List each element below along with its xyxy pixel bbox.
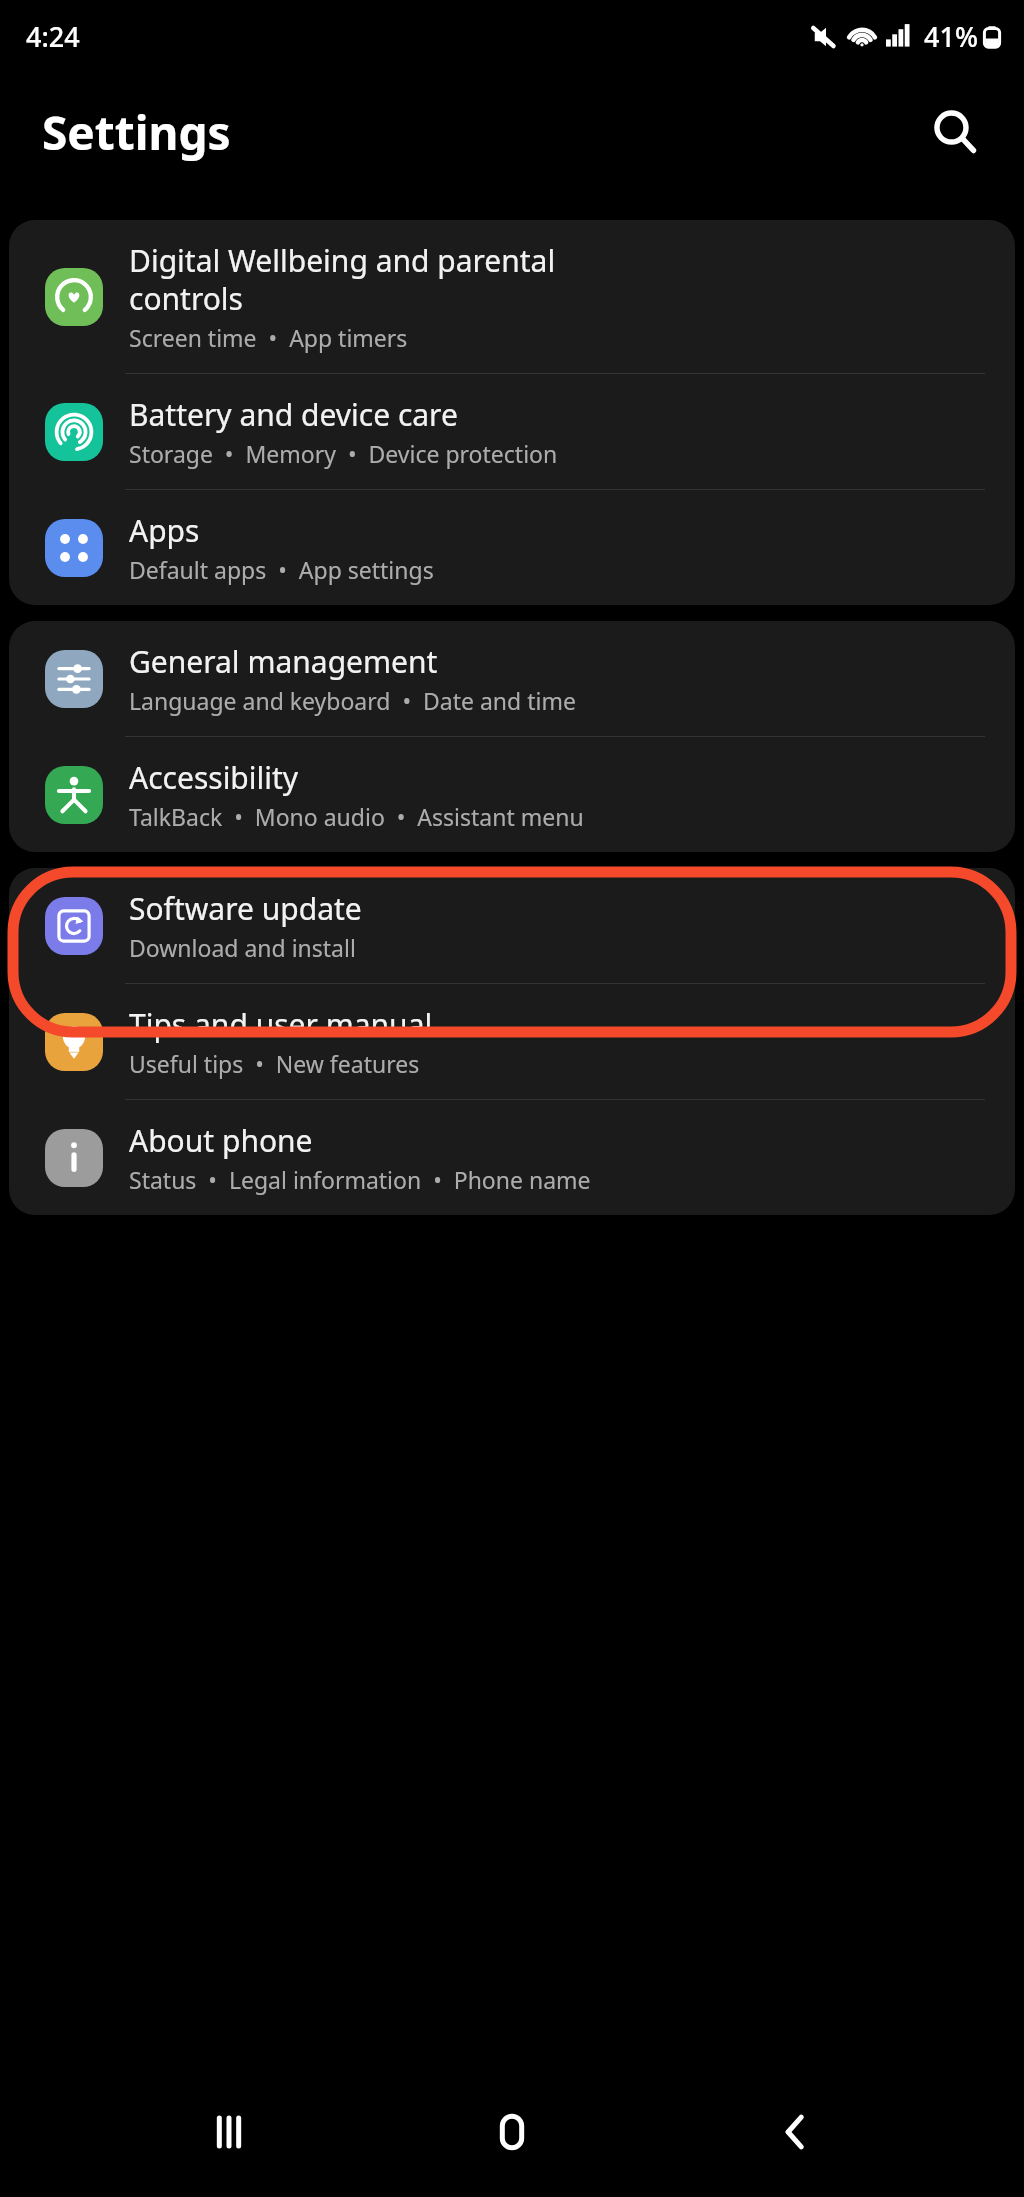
staticText: Language and keyboard • Date and time <box>129 685 576 716</box>
button[interactable]: Battery and device care <box>9 374 1015 489</box>
button[interactable]: General management <box>9 621 1015 736</box>
staticText: Digital Wellbeing and parental controls <box>129 240 556 319</box>
staticText: Software update <box>129 888 362 929</box>
button[interactable]: Software update <box>9 868 1015 983</box>
button[interactable]: Digital Wellbeing and parental controls <box>9 220 1015 373</box>
button[interactable]: Back <box>741 2077 851 2187</box>
staticText: TalkBack • Mono audio • Assistant menu <box>129 801 584 832</box>
button[interactable]: Tips and user manual <box>9 984 1015 1099</box>
staticText: 41% <box>924 18 978 55</box>
staticText: Battery and device care <box>129 394 458 435</box>
staticText: General management <box>129 641 438 682</box>
staticText: About phone <box>129 1120 313 1161</box>
staticText: Settings <box>42 101 231 164</box>
staticText: 4:24 <box>26 18 80 55</box>
button[interactable]: Accessibility <box>9 737 1015 852</box>
staticText: Default apps • App settings <box>129 554 434 585</box>
staticText: Accessibility <box>129 757 299 798</box>
button[interactable]: Recents <box>174 2077 284 2187</box>
staticText: Storage • Memory • Device protection <box>129 438 558 469</box>
staticText: Status • Legal information • Phone name <box>129 1164 591 1195</box>
staticText: Download and install <box>129 932 356 963</box>
staticText: Apps <box>129 510 200 551</box>
button[interactable]: Search <box>922 99 988 165</box>
staticText: Tips and user manual <box>129 1004 433 1045</box>
staticText: Screen time • App timers <box>129 322 408 353</box>
button[interactable]: Home <box>457 2077 567 2187</box>
button[interactable]: About phone <box>9 1100 1015 1215</box>
staticText: Useful tips • New features <box>129 1048 420 1079</box>
button[interactable]: Apps <box>9 490 1015 605</box>
